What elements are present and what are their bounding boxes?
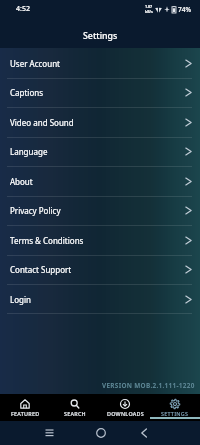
button[interactable]: Login [0,285,200,314]
staticText: 74% [178,5,191,14]
staticText: 4:52 [16,4,30,14]
staticText: Login [10,294,31,305]
staticText: 1.87 [145,4,153,9]
staticText: FEATURED [11,410,40,417]
button[interactable]: Video and Sound [0,108,200,137]
button[interactable]: Home [95,427,107,439]
button[interactable]: User Account [0,49,200,78]
staticText: Terms & Conditions [10,235,84,246]
button[interactable]: Recents [45,428,55,438]
staticText: Video and Sound [10,117,74,128]
button[interactable]: About [0,167,200,196]
staticText: User Account [10,58,60,69]
button[interactable]: Language [0,137,200,166]
staticText: DOWNLOADS [107,410,144,417]
button[interactable]: DOWNLOADS [100,394,150,421]
staticText: SETTINGS [161,410,189,417]
button[interactable]: Captions [0,78,200,107]
staticText: kB/s [145,9,153,14]
staticText: Privacy Policy [10,205,61,216]
staticText: VERSION MOB.2.1.111-1220 [102,381,195,390]
button[interactable]: Back [138,427,150,439]
button[interactable]: FEATURED [0,394,50,421]
button[interactable]: SETTINGS [150,394,200,421]
staticText: Language [10,146,48,157]
button[interactable]: SEARCH [50,394,100,421]
staticText: About [10,176,33,187]
button[interactable]: Privacy Policy [0,196,200,225]
staticText: SEARCH [64,410,86,417]
button[interactable]: Terms & Conditions [0,226,200,255]
staticText: Settings [83,30,118,42]
staticText: Contact Support [10,264,72,275]
button[interactable]: Contact Support [0,255,200,284]
staticText: Captions [10,87,44,98]
